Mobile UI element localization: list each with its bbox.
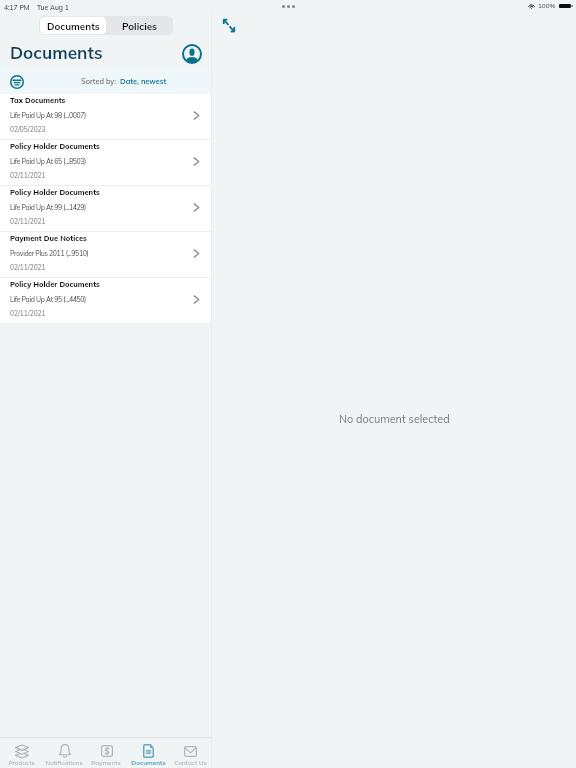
staticText: Contact Us (174, 759, 207, 767)
button[interactable]: Policy Holder Documents (0, 186, 211, 232)
button[interactable]: Notifications (43, 738, 85, 768)
staticText: 02/11/2021 (10, 263, 46, 271)
button[interactable]: Products (0, 738, 43, 768)
button[interactable]: Sorted by: (81, 77, 167, 86)
staticText: Date, newest (120, 77, 167, 86)
button[interactable]: Payment Due Notices (0, 232, 211, 278)
button[interactable]: Policies (106, 17, 172, 34)
staticText: Tax Documents (10, 96, 66, 105)
staticText: Sorted by: (81, 77, 116, 86)
button[interactable]: Policy Holder Documents (0, 140, 211, 186)
button[interactable]: Policy Holder Documents (0, 278, 211, 324)
button[interactable]: Filter (10, 75, 24, 89)
staticText: Life Paid Up At 98 (...0007) (10, 111, 86, 120)
staticText: 02/11/2021 (10, 171, 46, 179)
staticText: Tue Aug 1 (37, 3, 69, 11)
staticText: No document selected (339, 412, 450, 426)
button[interactable]: Payments (85, 738, 127, 768)
staticText: Payment Due Notices (10, 234, 87, 243)
staticText: Products (8, 759, 35, 767)
staticText: Documents (47, 20, 100, 32)
staticText: 02/05/2023 (10, 125, 46, 133)
staticText: 100% (538, 2, 556, 10)
staticText: Documents (10, 42, 103, 64)
button[interactable]: Tax Documents (0, 94, 211, 140)
staticText: Policies (122, 20, 157, 32)
staticText: Policy Holder Documents (10, 142, 100, 151)
staticText: Provider Plus 2011 (...9510) (10, 249, 89, 258)
staticText: Life Paid Up At 65 (...8503) (10, 157, 86, 166)
button[interactable]: Contact Us (169, 738, 211, 768)
button[interactable]: Documents (127, 738, 169, 768)
button[interactable]: Account (182, 44, 202, 64)
staticText: 4:17 PM (4, 3, 30, 11)
staticText: 02/11/2021 (10, 309, 46, 317)
staticText: Notifications (45, 759, 83, 767)
staticText: Life Paid Up At 99 (...1429) (10, 203, 86, 212)
staticText: Documents (131, 759, 166, 767)
staticText: Payments (91, 759, 121, 767)
button[interactable]: Documents (40, 17, 106, 34)
staticText: Policy Holder Documents (10, 188, 100, 197)
staticText: Life Paid Up At 95 (...4450) (10, 295, 86, 304)
button[interactable]: Expand (223, 19, 235, 32)
staticText: 02/11/2021 (10, 217, 46, 225)
staticText: Policy Holder Documents (10, 280, 100, 289)
